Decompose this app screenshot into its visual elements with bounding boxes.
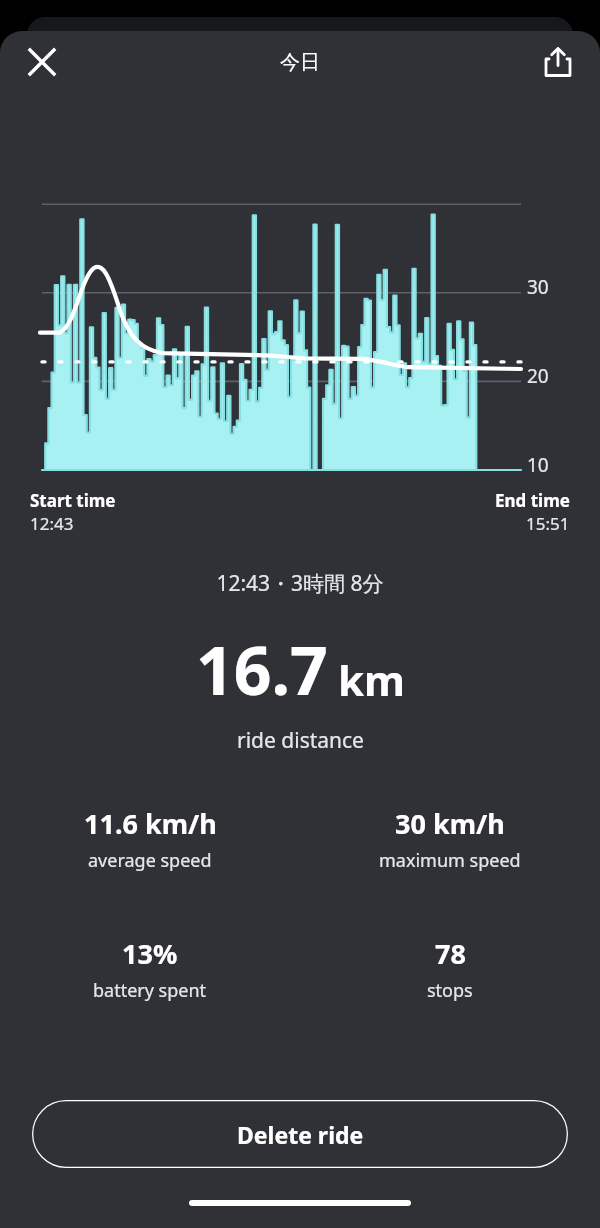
staticText: 15:51: [526, 512, 570, 535]
button[interactable]: Share: [532, 36, 584, 88]
staticText: 10: [527, 452, 549, 478]
staticText: ride distance: [237, 726, 364, 755]
staticText: Delete ride: [237, 1119, 364, 1150]
staticText: km: [338, 651, 405, 708]
staticText: battery spent: [93, 978, 207, 1003]
staticText: stops: [427, 978, 473, 1003]
button[interactable]: Delete ride: [32, 1100, 568, 1168]
staticText: 20: [527, 363, 549, 389]
staticText: Start time: [30, 489, 116, 512]
staticText: average speed: [88, 848, 212, 873]
staticText: 13%: [122, 935, 178, 972]
staticText: End time: [495, 489, 570, 512]
staticText: 30 km/h: [395, 805, 505, 842]
staticText: 11.6 km/h: [84, 805, 217, 842]
staticText: 30: [527, 274, 549, 300]
button[interactable]: Close: [16, 36, 68, 88]
staticText: 12:43・3時間 8分: [0, 569, 600, 598]
staticText: maximum speed: [379, 848, 521, 873]
staticText: 今日: [280, 50, 320, 75]
staticText: 16.7: [196, 624, 328, 714]
staticText: 78: [435, 935, 466, 972]
staticText: 12:43: [30, 512, 74, 535]
